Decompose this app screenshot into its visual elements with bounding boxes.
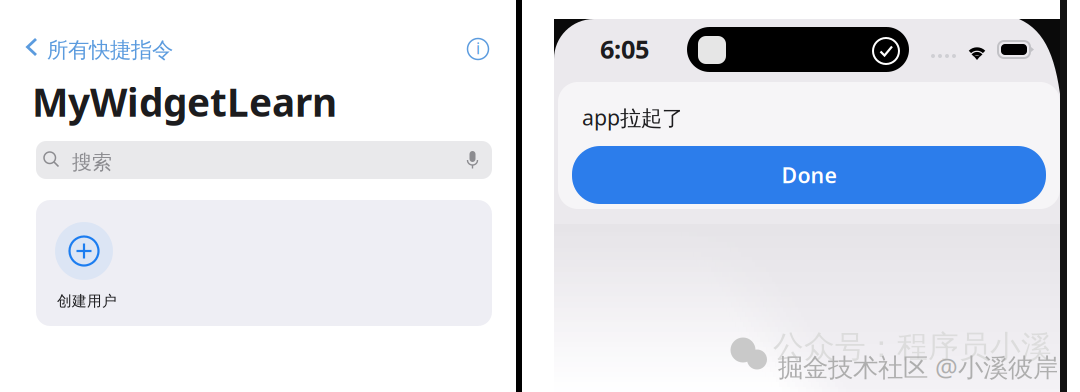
staticText: 掘金技术社区 @小溪彼岸: [778, 350, 1058, 384]
staticText: 6:05: [600, 32, 649, 66]
staticText: app拉起了: [582, 103, 683, 131]
button[interactable]: 所有快捷指令: [22, 31, 180, 63]
staticText: 创建用户: [57, 292, 117, 310]
button[interactable]: 创建用户: [36, 200, 492, 326]
staticText: 公众号：程序员小溪: [773, 328, 1052, 366]
staticText: 所有快捷指令: [47, 37, 173, 63]
staticText: 搜索: [72, 150, 112, 175]
staticText: i: [476, 37, 480, 59]
button[interactable]: Information: [461, 32, 495, 66]
staticText: Done: [781, 161, 836, 189]
button[interactable]: Done: [572, 146, 1046, 204]
staticText: MyWidgetLearn: [32, 76, 337, 127]
